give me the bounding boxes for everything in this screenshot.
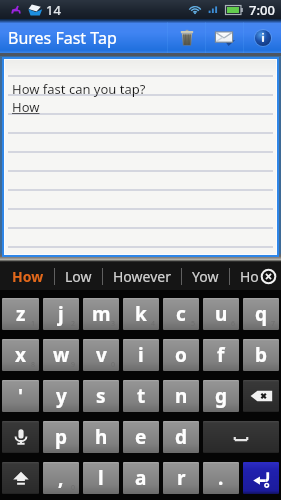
button[interactable]: o bbox=[163, 339, 199, 371]
staticText: l bbox=[98, 465, 104, 491]
button[interactable]: . bbox=[203, 462, 239, 494]
staticText: j bbox=[58, 301, 64, 327]
staticText: e bbox=[135, 424, 147, 450]
staticText: d bbox=[175, 424, 188, 450]
staticText: z bbox=[16, 301, 26, 327]
button[interactable]: u bbox=[203, 298, 239, 330]
staticText: How bbox=[12, 267, 44, 286]
button[interactable]: q bbox=[243, 298, 279, 330]
staticText: g bbox=[215, 383, 228, 409]
button[interactable]: e bbox=[123, 421, 159, 453]
staticText: 7 bbox=[271, 319, 276, 329]
staticText: y bbox=[56, 383, 67, 409]
staticText: t bbox=[137, 383, 146, 409]
button[interactable]: Delete bbox=[168, 22, 205, 53]
staticText: u bbox=[215, 301, 228, 327]
staticText: How bbox=[12, 98, 40, 116]
button[interactable]: w bbox=[43, 339, 79, 371]
staticText: 3 bbox=[111, 319, 116, 329]
staticText: Yow bbox=[192, 267, 219, 286]
staticText: However bbox=[113, 267, 171, 286]
staticText: p bbox=[55, 424, 68, 450]
staticText: x bbox=[15, 342, 26, 368]
button[interactable]: d bbox=[163, 421, 199, 453]
button[interactable]: p bbox=[43, 421, 79, 453]
staticText: s bbox=[96, 383, 106, 409]
staticText: m bbox=[92, 301, 111, 327]
button[interactable]: l bbox=[83, 462, 119, 494]
button[interactable]: s bbox=[83, 380, 119, 412]
button[interactable]: , bbox=[43, 462, 79, 494]
button[interactable]: r bbox=[163, 462, 199, 494]
button[interactable]: a bbox=[123, 462, 159, 494]
staticText: 2 bbox=[71, 319, 76, 329]
button[interactable]: Space bbox=[203, 421, 279, 453]
button[interactable]: Yow bbox=[192, 262, 219, 290]
staticText: 6 bbox=[231, 319, 236, 329]
staticText: 9 bbox=[71, 360, 76, 370]
staticText: How fast can you tap? bbox=[12, 80, 146, 98]
staticText: q bbox=[255, 301, 268, 327]
button[interactable]: x bbox=[2, 339, 39, 371]
button[interactable]: However bbox=[113, 262, 171, 290]
staticText: Low bbox=[65, 267, 92, 286]
staticText: Bures Fast Tap bbox=[8, 27, 117, 49]
button[interactable]: Voice input bbox=[2, 421, 39, 453]
button[interactable]: v bbox=[83, 339, 119, 371]
button[interactable]: Ho bbox=[240, 262, 259, 290]
button[interactable]: j bbox=[43, 298, 79, 330]
button[interactable]: t bbox=[123, 380, 159, 412]
button[interactable]: z bbox=[2, 298, 39, 330]
staticText: . bbox=[218, 465, 224, 491]
staticText: n bbox=[175, 383, 188, 409]
button[interactable]: How bbox=[12, 262, 44, 290]
staticText: 0 bbox=[111, 360, 116, 370]
staticText: k bbox=[135, 301, 147, 327]
staticText: v bbox=[96, 342, 107, 368]
button[interactable]: Close suggestions bbox=[260, 268, 277, 285]
button[interactable]: i bbox=[123, 339, 159, 371]
staticText: 0 bbox=[71, 483, 76, 493]
button[interactable]: h bbox=[83, 421, 119, 453]
button[interactable]: Enter bbox=[243, 462, 279, 494]
button[interactable]: ' bbox=[2, 380, 39, 412]
staticText: 7:00 bbox=[249, 1, 275, 19]
staticText: h bbox=[95, 424, 108, 450]
staticText: 4 bbox=[151, 319, 156, 329]
staticText: a bbox=[135, 465, 147, 491]
staticText: c bbox=[176, 301, 186, 327]
staticText: o bbox=[175, 342, 187, 368]
staticText: w bbox=[53, 342, 70, 368]
staticText: r bbox=[177, 465, 186, 491]
staticText: b bbox=[255, 342, 268, 368]
button[interactable]: g bbox=[203, 380, 239, 412]
staticText: f bbox=[217, 342, 225, 368]
button[interactable]: n bbox=[163, 380, 199, 412]
button[interactable]: Info bbox=[244, 22, 281, 53]
staticText: Ho bbox=[240, 267, 259, 286]
staticText: 14 bbox=[46, 1, 61, 19]
button[interactable]: k bbox=[123, 298, 159, 330]
button[interactable]: f bbox=[203, 339, 239, 371]
button[interactable]: Backspace bbox=[243, 380, 279, 412]
staticText: 1 bbox=[31, 319, 36, 329]
button[interactable]: Low bbox=[65, 262, 92, 290]
staticText: 5 bbox=[191, 319, 196, 329]
button[interactable]: Mail bbox=[206, 22, 243, 53]
staticText: , bbox=[58, 465, 64, 491]
button[interactable]: Shift bbox=[2, 462, 39, 494]
staticText: 8 bbox=[31, 360, 36, 370]
staticText: i bbox=[138, 342, 144, 368]
button[interactable]: y bbox=[43, 380, 79, 412]
staticText: ' bbox=[18, 383, 24, 409]
button[interactable]: m bbox=[83, 298, 119, 330]
button[interactable]: c bbox=[163, 298, 199, 330]
button[interactable]: b bbox=[243, 339, 279, 371]
